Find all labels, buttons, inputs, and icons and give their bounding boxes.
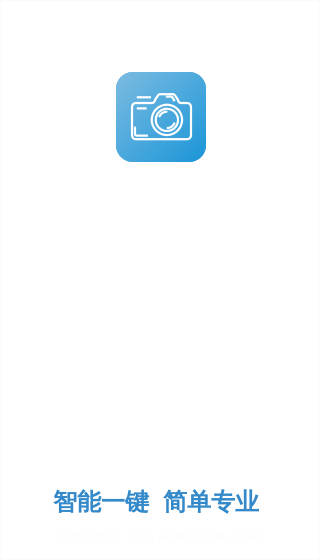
- staticText: 智能一键 简单专业: [53, 487, 259, 517]
